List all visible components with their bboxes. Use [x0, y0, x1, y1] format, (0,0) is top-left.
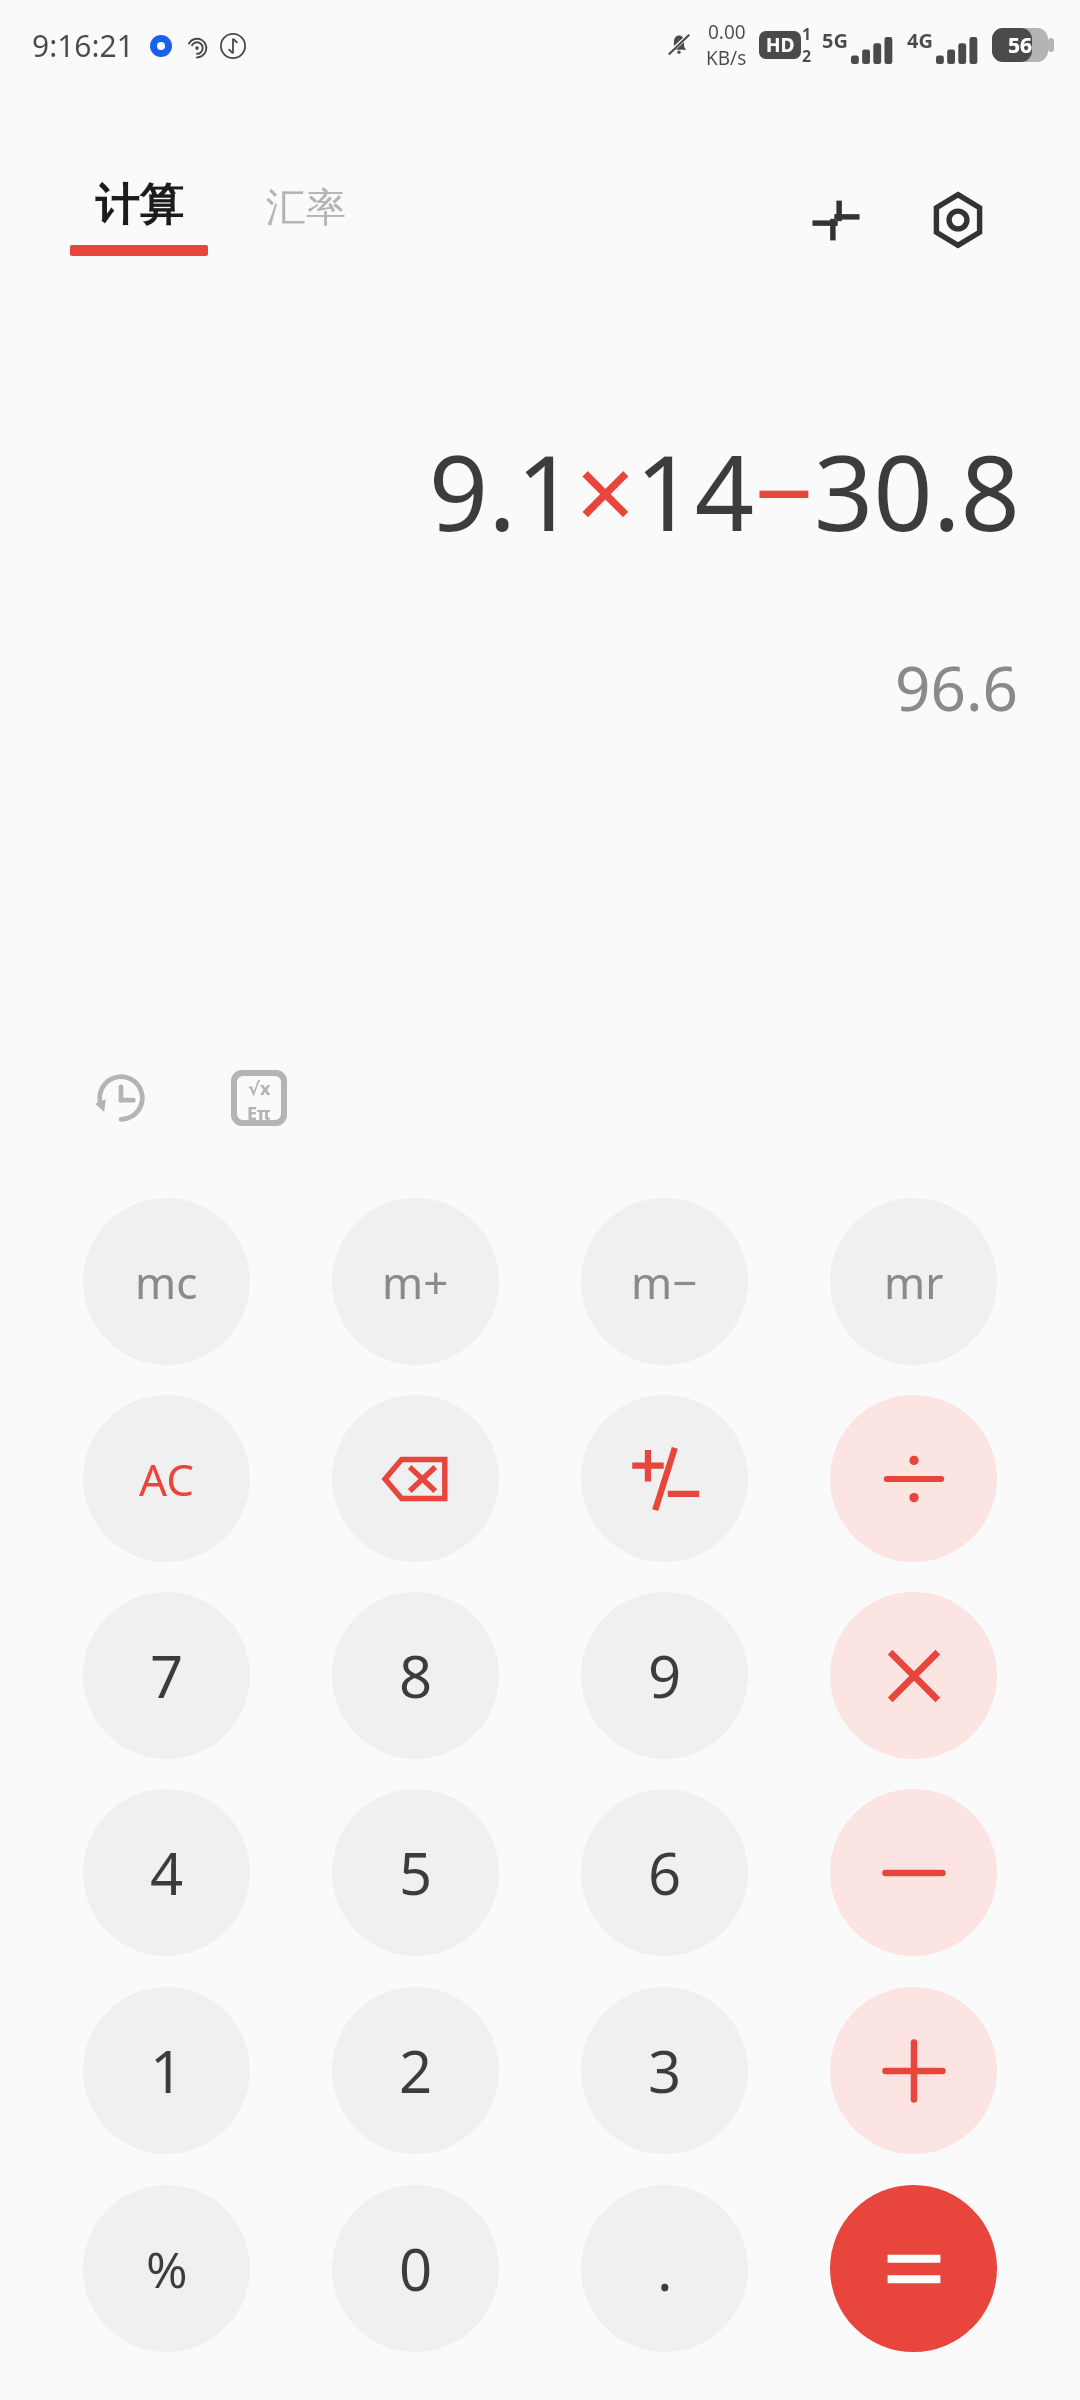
button[interactable]: 8	[332, 1592, 499, 1759]
button[interactable]: 5	[332, 1789, 499, 1956]
staticText: mc	[135, 1252, 198, 1312]
staticText: 8	[399, 1636, 433, 1715]
staticText: 2	[399, 2031, 433, 2110]
staticText: %	[146, 2235, 188, 2303]
staticText: 9:16:21	[32, 25, 134, 66]
button[interactable]: Divide	[830, 1395, 997, 1562]
button[interactable]: m−	[581, 1198, 748, 1365]
button[interactable]: Plus minus	[581, 1395, 748, 1562]
staticText: AC	[139, 1449, 195, 1509]
button[interactable]: Equals	[830, 2185, 997, 2352]
staticText: .	[657, 2229, 673, 2308]
staticText: m−	[631, 1252, 698, 1312]
staticText: 3	[648, 2031, 682, 2110]
button[interactable]: History	[78, 1055, 164, 1141]
staticText: Eπ	[247, 1101, 271, 1120]
staticText: 2	[802, 45, 812, 67]
staticText: KB/s	[706, 45, 747, 71]
button[interactable]: Plus	[830, 1987, 997, 2154]
staticText: 1	[150, 2031, 184, 2110]
staticText: 9.1×14−30.8	[60, 420, 1020, 562]
button[interactable]: 2	[332, 1987, 499, 2154]
staticText: 0.00	[708, 19, 746, 45]
button[interactable]: 9	[581, 1592, 748, 1759]
staticText: 1	[802, 23, 812, 45]
staticText: m+	[382, 1252, 449, 1312]
staticText: 汇率	[266, 182, 346, 232]
staticText: 96.6	[0, 645, 1018, 729]
button[interactable]: 7	[83, 1592, 250, 1759]
staticText: 计算	[95, 178, 183, 233]
button[interactable]: Settings	[918, 180, 998, 260]
staticText: 4	[150, 1833, 184, 1912]
staticText: 7	[150, 1636, 184, 1715]
staticText: 0	[399, 2229, 433, 2308]
button[interactable]: Minus	[830, 1789, 997, 1956]
button[interactable]: Backspace	[332, 1395, 499, 1562]
button[interactable]: 6	[581, 1789, 748, 1956]
staticText: 4G	[907, 27, 933, 54]
staticText: 5G	[822, 27, 848, 54]
button[interactable]: Collapse	[796, 180, 876, 260]
staticText: 9	[648, 1636, 682, 1715]
button[interactable]: mc	[83, 1198, 250, 1365]
button[interactable]: 1	[83, 1987, 250, 2154]
staticText: mr	[884, 1252, 944, 1312]
button[interactable]: 0	[332, 2185, 499, 2352]
staticText: √x	[248, 1076, 271, 1101]
button[interactable]: m+	[332, 1198, 499, 1365]
button[interactable]: 4	[83, 1789, 250, 1956]
button[interactable]: AC	[83, 1395, 250, 1562]
staticText: 5	[399, 1833, 433, 1912]
staticText: 56	[1008, 31, 1033, 60]
button[interactable]: 3	[581, 1987, 748, 2154]
staticText: 6	[648, 1833, 682, 1912]
button[interactable]: Scientific mode	[216, 1055, 302, 1141]
staticText: HD	[766, 32, 795, 58]
button[interactable]: 汇率	[266, 178, 346, 232]
button[interactable]: 计算	[70, 178, 208, 256]
button[interactable]: %	[83, 2185, 250, 2352]
button[interactable]: mr	[830, 1198, 997, 1365]
button[interactable]: .	[581, 2185, 748, 2352]
button[interactable]: Multiply	[830, 1592, 997, 1759]
